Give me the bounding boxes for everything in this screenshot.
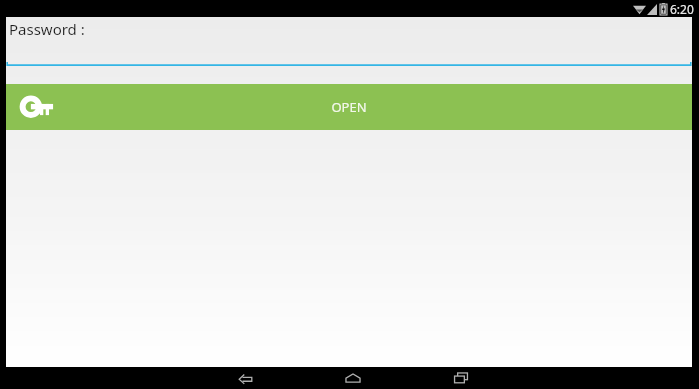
button[interactable]: Recents xyxy=(442,367,480,389)
button[interactable]: Key xyxy=(6,84,692,130)
other: Key xyxy=(22,98,52,116)
button[interactable]: Password : xyxy=(6,17,692,84)
staticText: 6:20 xyxy=(670,1,694,17)
button[interactable]: Home xyxy=(334,367,372,389)
staticText: Password : xyxy=(9,19,85,39)
staticText: OPEN xyxy=(331,98,367,116)
button[interactable]: Back xyxy=(226,367,264,389)
